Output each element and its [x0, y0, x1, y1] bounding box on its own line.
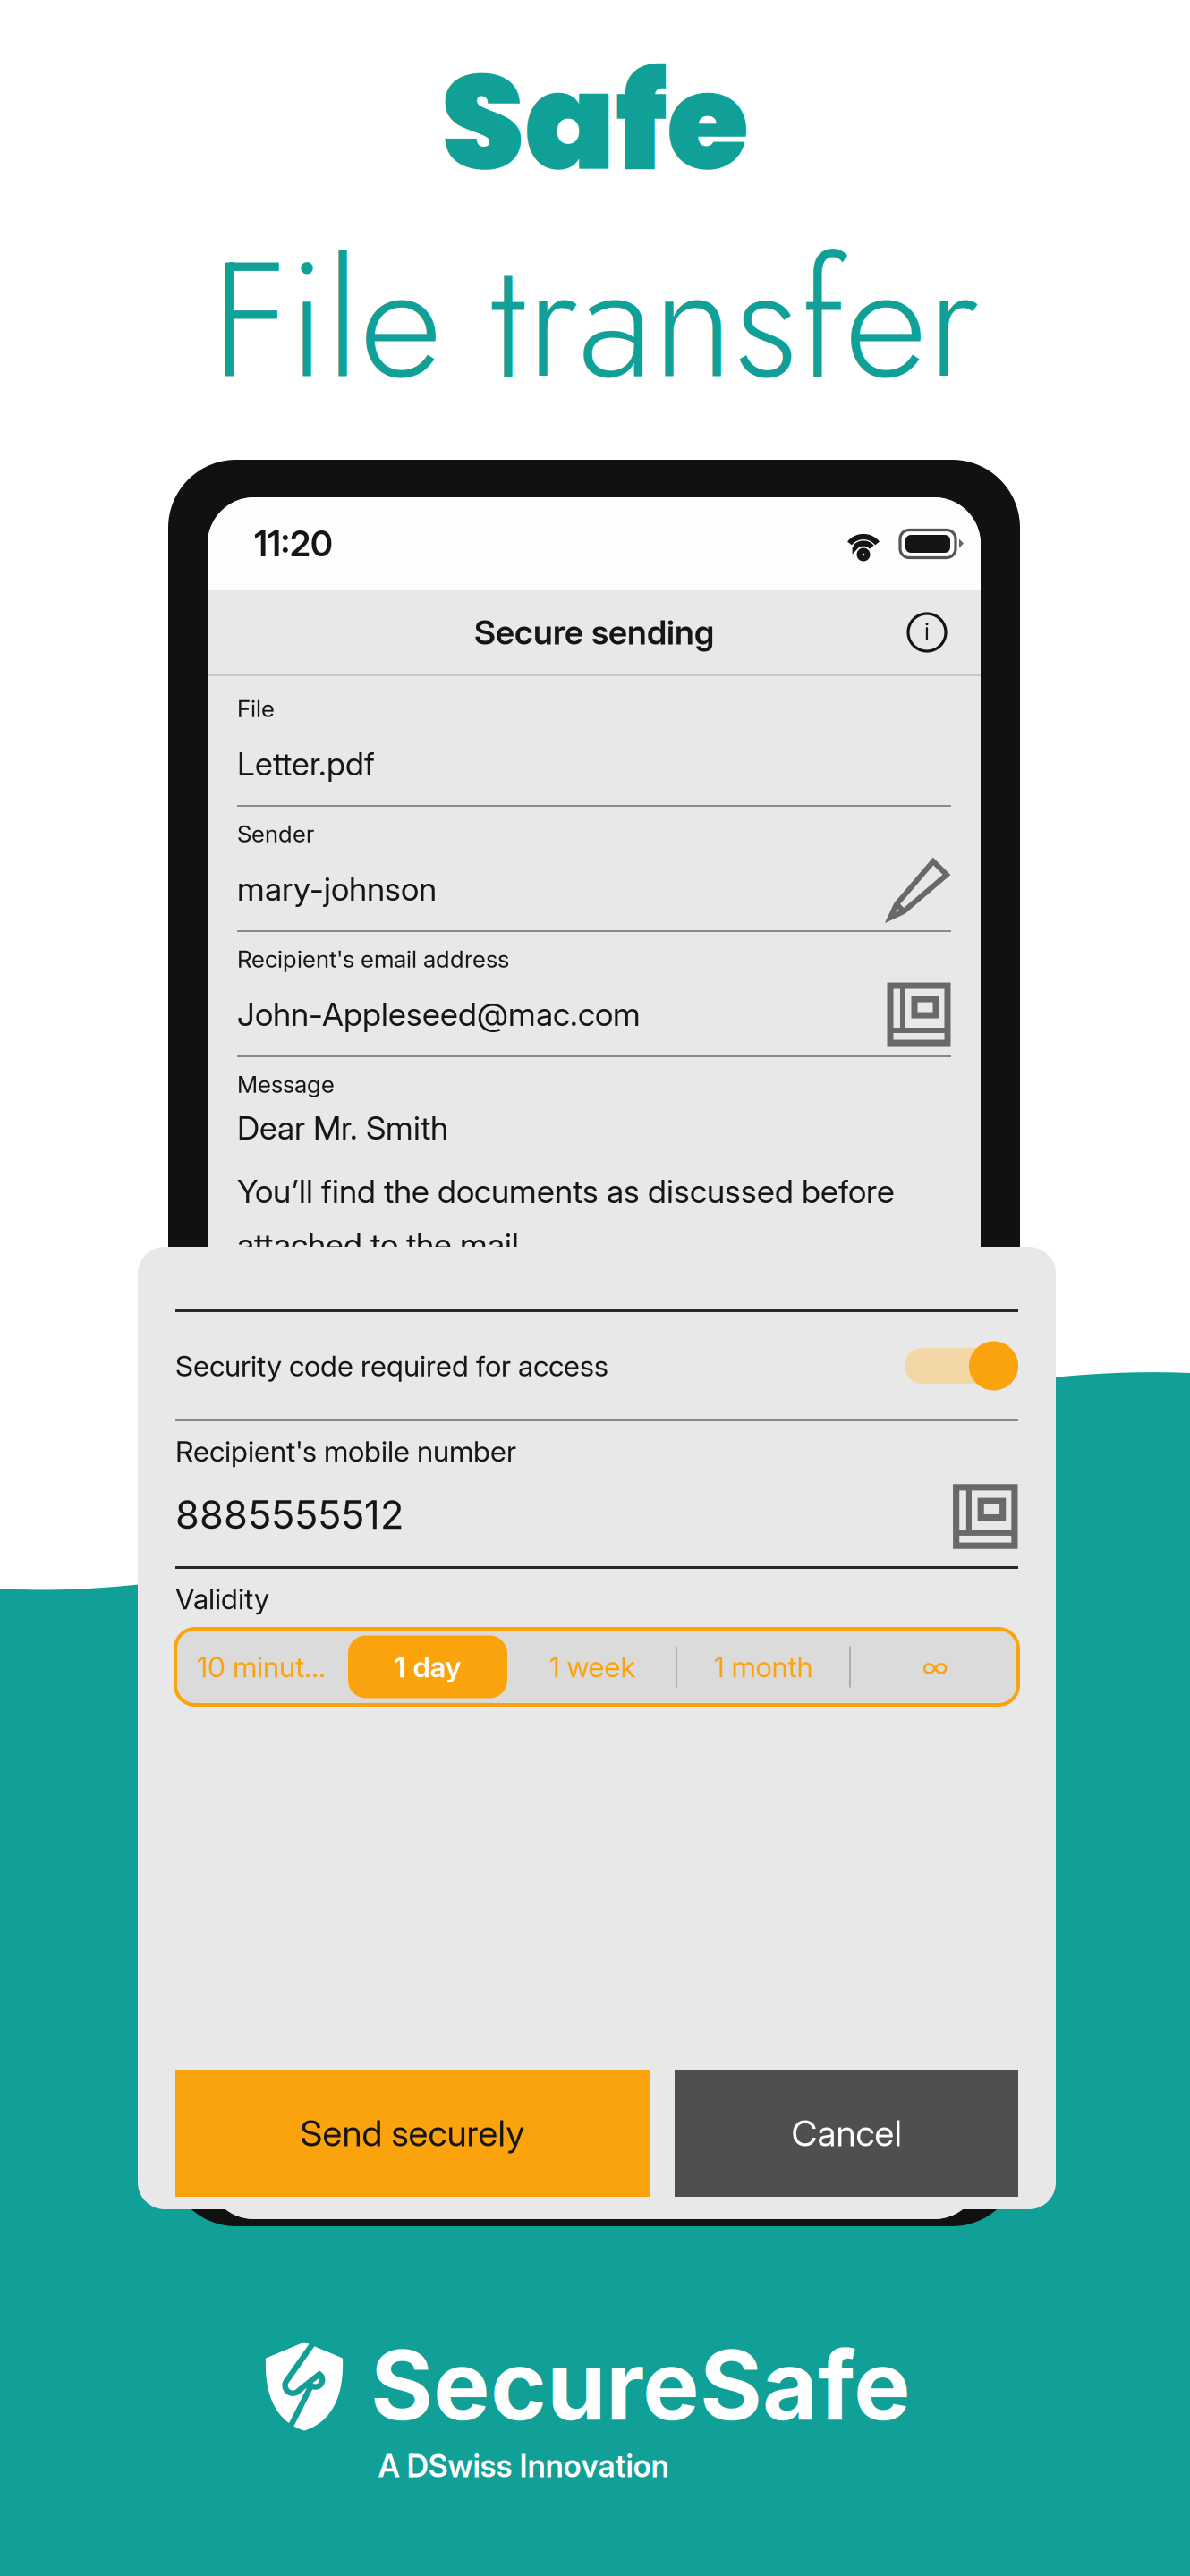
staticText: 8885555512: [175, 1491, 404, 1538]
staticText: Sender: [237, 820, 314, 848]
staticText: SecureSafe: [370, 2327, 911, 2443]
button[interactable]: ∞: [851, 1635, 1019, 1698]
staticText: mary-johnson: [237, 870, 437, 909]
staticText: Cancel: [791, 2112, 901, 2155]
button[interactable]: Choose contact: [953, 1485, 1018, 1550]
staticText: Validity: [175, 1582, 269, 1616]
staticText: 1 day: [394, 1649, 461, 1684]
button[interactable]: Information: [905, 611, 948, 654]
staticText: 11:20: [254, 523, 333, 565]
staticText: A DSwiss Innovation: [378, 2447, 669, 2485]
button[interactable]: Security code required toggle: [905, 1337, 1018, 1394]
staticText: 1 week: [549, 1649, 636, 1684]
staticText: Recipient's mobile number: [175, 1434, 516, 1469]
staticText: Safe: [441, 29, 749, 216]
button[interactable]: Cancel: [675, 2070, 1018, 2197]
button[interactable]: Send securely: [175, 2070, 650, 2197]
staticText: Dear Mr. Smith: [237, 1108, 448, 1147]
staticText: attached to the mail.: [237, 1225, 527, 1264]
staticText: File: [237, 695, 275, 723]
staticText: 10 minut...: [197, 1649, 326, 1684]
staticText: ∞: [922, 1649, 948, 1684]
button[interactable]: 1 day: [348, 1635, 507, 1698]
staticText: Message: [237, 1070, 335, 1098]
staticText: John-Appleseed@mac.com: [237, 995, 641, 1034]
staticText: Letter.pdf: [237, 744, 375, 783]
staticText: 1 month: [714, 1649, 813, 1684]
button[interactable]: 10 minut...: [174, 1635, 348, 1698]
staticText: Recipient's email address: [237, 945, 509, 973]
staticText: Secure sending: [474, 612, 714, 653]
staticText: Send securely: [300, 2112, 525, 2155]
button[interactable]: 1 month: [677, 1635, 849, 1698]
staticText: i: [924, 618, 930, 645]
staticText: Security code required for access: [175, 1348, 608, 1383]
staticText: File transfer: [211, 204, 979, 437]
staticText: You’ll find the documents as discussed b…: [237, 1172, 895, 1211]
button[interactable]: 1 week: [509, 1635, 676, 1698]
